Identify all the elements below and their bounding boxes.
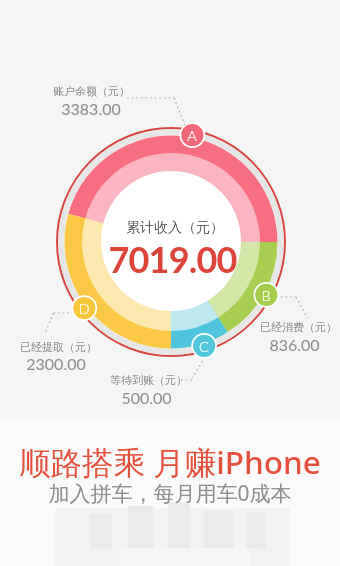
button[interactable] [10, 440, 330, 510]
staticText: 加入拼车，每月用车0成本 [48, 479, 292, 508]
staticText: 账户余额（元） [53, 84, 130, 98]
staticText: 7019.00 [108, 237, 237, 280]
staticText: 3383.00 [61, 99, 121, 118]
staticText: 累计收入（元） [126, 219, 224, 237]
staticText: 顺路搭乘 月赚iPhone [19, 440, 321, 483]
staticText: 已经消费（元） [260, 320, 337, 334]
staticText: A [187, 127, 197, 144]
staticText: 已经提取（元） [20, 340, 97, 354]
staticText: 500.00 [121, 388, 172, 407]
staticText: B [261, 287, 271, 304]
staticText: 836.00 [269, 335, 320, 354]
staticText: 2300.00 [26, 354, 86, 373]
staticText: C [199, 338, 209, 355]
staticText: 等待到账（元） [110, 373, 187, 387]
staticText: D [78, 300, 90, 317]
